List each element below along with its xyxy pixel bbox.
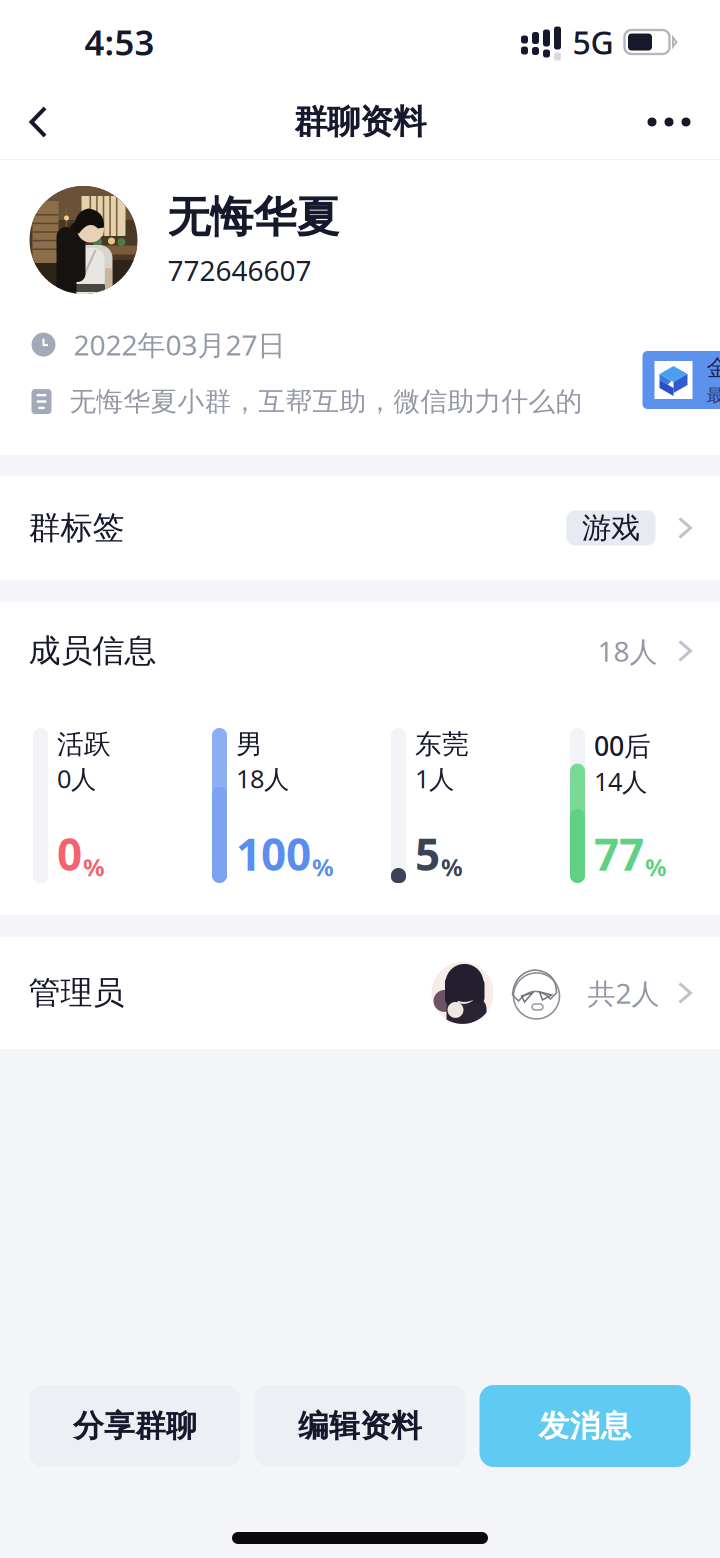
staticText: 772646607 bbox=[167, 252, 311, 289]
staticText: 4:53 bbox=[84, 19, 154, 65]
staticText: 2022年03月27日 bbox=[73, 326, 285, 363]
staticText: 0人 bbox=[57, 762, 96, 795]
staticText: 群聊资料 bbox=[294, 101, 426, 142]
staticText: 5G bbox=[572, 21, 613, 63]
staticText: % bbox=[83, 851, 105, 883]
button[interactable]: 成员信息 bbox=[0, 602, 720, 700]
staticText: 东莞 bbox=[415, 728, 469, 761]
staticText: 无悔华夏 bbox=[167, 191, 339, 244]
button[interactable]: 分享群聊 bbox=[29, 1385, 240, 1467]
button[interactable]: More bbox=[621, 84, 720, 160]
staticText: 发消息 bbox=[538, 1407, 631, 1445]
button[interactable]: Back bbox=[0, 84, 74, 160]
staticText: 77 bbox=[594, 824, 644, 883]
button[interactable]: Group avatar bbox=[29, 186, 137, 294]
staticText: 游戏 bbox=[582, 510, 640, 546]
staticText: 最近 bbox=[706, 385, 720, 406]
staticText: 男 bbox=[236, 728, 263, 761]
staticText: 管理员 bbox=[28, 973, 124, 1013]
staticText: % bbox=[441, 851, 463, 883]
staticText: 5 bbox=[415, 824, 440, 883]
staticText: 0 bbox=[57, 824, 82, 883]
staticText: % bbox=[645, 851, 667, 883]
staticText: 群标签 bbox=[28, 508, 124, 548]
staticText: 编辑资料 bbox=[298, 1407, 422, 1445]
staticText: 无悔华夏小群，互帮互助，微信助力什么的 bbox=[69, 385, 582, 418]
button[interactable]: 编辑资料 bbox=[254, 1385, 465, 1467]
staticText: 18人 bbox=[236, 762, 289, 795]
button[interactable]: 群标签 bbox=[0, 476, 720, 580]
staticText: 金山 bbox=[706, 354, 720, 382]
staticText: 1人 bbox=[415, 762, 454, 795]
staticText: 100 bbox=[236, 824, 311, 883]
staticText: % bbox=[312, 851, 334, 883]
button[interactable]: 发消息 bbox=[479, 1385, 690, 1467]
staticText: 00后 bbox=[594, 728, 651, 763]
staticText: 18人 bbox=[597, 632, 657, 669]
staticText: 14人 bbox=[594, 764, 647, 798]
staticText: 分享群聊 bbox=[73, 1407, 197, 1445]
staticText: 共2人 bbox=[587, 974, 659, 1011]
button[interactable]: 管理员 bbox=[0, 937, 720, 1049]
staticText: 成员信息 bbox=[28, 631, 156, 671]
staticText: 活跃 bbox=[57, 728, 111, 761]
